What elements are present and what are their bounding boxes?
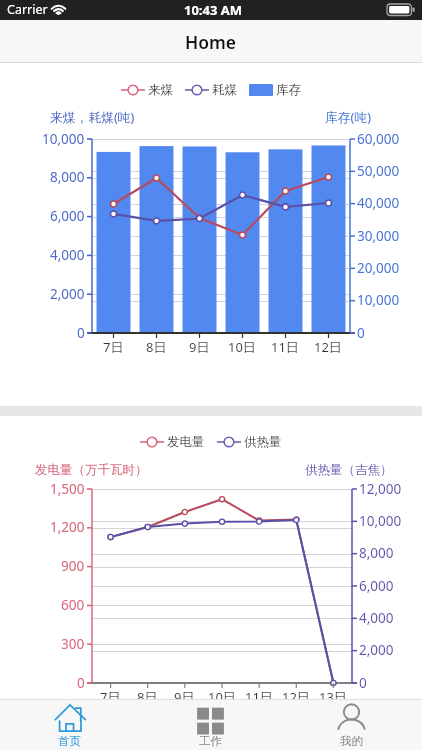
staticText: 来煤，耗煤(吨) bbox=[50, 108, 135, 125]
staticText: 8日 bbox=[146, 338, 167, 356]
staticText: 50,000 bbox=[357, 162, 400, 180]
staticText: Carrier bbox=[7, 1, 48, 18]
staticText: 来煤 bbox=[148, 82, 173, 98]
staticText: 8,000 bbox=[359, 544, 394, 562]
staticText: 2,000 bbox=[50, 285, 85, 303]
staticText: 7日 bbox=[100, 688, 121, 706]
staticText: 6,000 bbox=[359, 577, 394, 595]
staticText: Home bbox=[185, 30, 237, 54]
staticText: 12,000 bbox=[359, 480, 402, 498]
staticText: 12日 bbox=[314, 338, 342, 356]
staticText: 1,200 bbox=[50, 518, 85, 536]
staticText: 300 bbox=[61, 635, 85, 653]
staticText: 11日 bbox=[271, 338, 299, 356]
staticText: 30,000 bbox=[357, 227, 400, 245]
staticText: 工作 bbox=[199, 734, 222, 748]
staticText: 供热量（吉焦） bbox=[305, 462, 393, 478]
button[interactable]: 工作 bbox=[140, 699, 281, 750]
staticText: 发电量 bbox=[167, 434, 205, 450]
staticText: 7日 bbox=[103, 338, 124, 356]
staticText: 12日 bbox=[282, 688, 310, 706]
staticText: 耗煤 bbox=[212, 82, 237, 98]
staticText: 4,000 bbox=[50, 246, 85, 264]
staticText: 8,000 bbox=[50, 168, 85, 186]
staticText: 11日 bbox=[245, 688, 273, 706]
staticText: 900 bbox=[61, 557, 85, 575]
staticText: 9日 bbox=[189, 338, 210, 356]
staticText: 10日 bbox=[208, 688, 236, 706]
staticText: 40,000 bbox=[357, 194, 400, 212]
staticText: 10:43 AM bbox=[184, 1, 243, 19]
staticText: 13日 bbox=[319, 688, 347, 706]
staticText: 10,000 bbox=[42, 130, 85, 148]
staticText: 600 bbox=[61, 596, 85, 614]
staticText: 10,000 bbox=[357, 291, 400, 309]
staticText: 0 bbox=[359, 674, 367, 692]
button[interactable]: 首页 bbox=[0, 699, 140, 750]
staticText: 1,500 bbox=[50, 480, 85, 498]
staticText: 0 bbox=[77, 324, 85, 342]
staticText: 60,000 bbox=[357, 130, 400, 148]
staticText: 供热量 bbox=[244, 434, 282, 450]
staticText: 库存(吨) bbox=[325, 108, 372, 125]
staticText: 10,000 bbox=[359, 512, 402, 530]
staticText: 0 bbox=[77, 674, 85, 692]
staticText: 首页 bbox=[58, 734, 81, 748]
staticText: 6,000 bbox=[50, 207, 85, 225]
staticText: 8日 bbox=[137, 688, 158, 706]
staticText: 发电量（万千瓦时） bbox=[35, 462, 148, 478]
staticText: 20,000 bbox=[357, 259, 400, 277]
staticText: 4,000 bbox=[359, 609, 394, 627]
button[interactable]: 我的 bbox=[281, 699, 422, 750]
staticText: 我的 bbox=[340, 734, 363, 748]
staticText: 10日 bbox=[228, 338, 256, 356]
staticText: 2,000 bbox=[359, 641, 394, 659]
staticText: 库存 bbox=[276, 82, 301, 98]
staticText: 0 bbox=[357, 324, 365, 342]
staticText: 9日 bbox=[174, 688, 195, 706]
